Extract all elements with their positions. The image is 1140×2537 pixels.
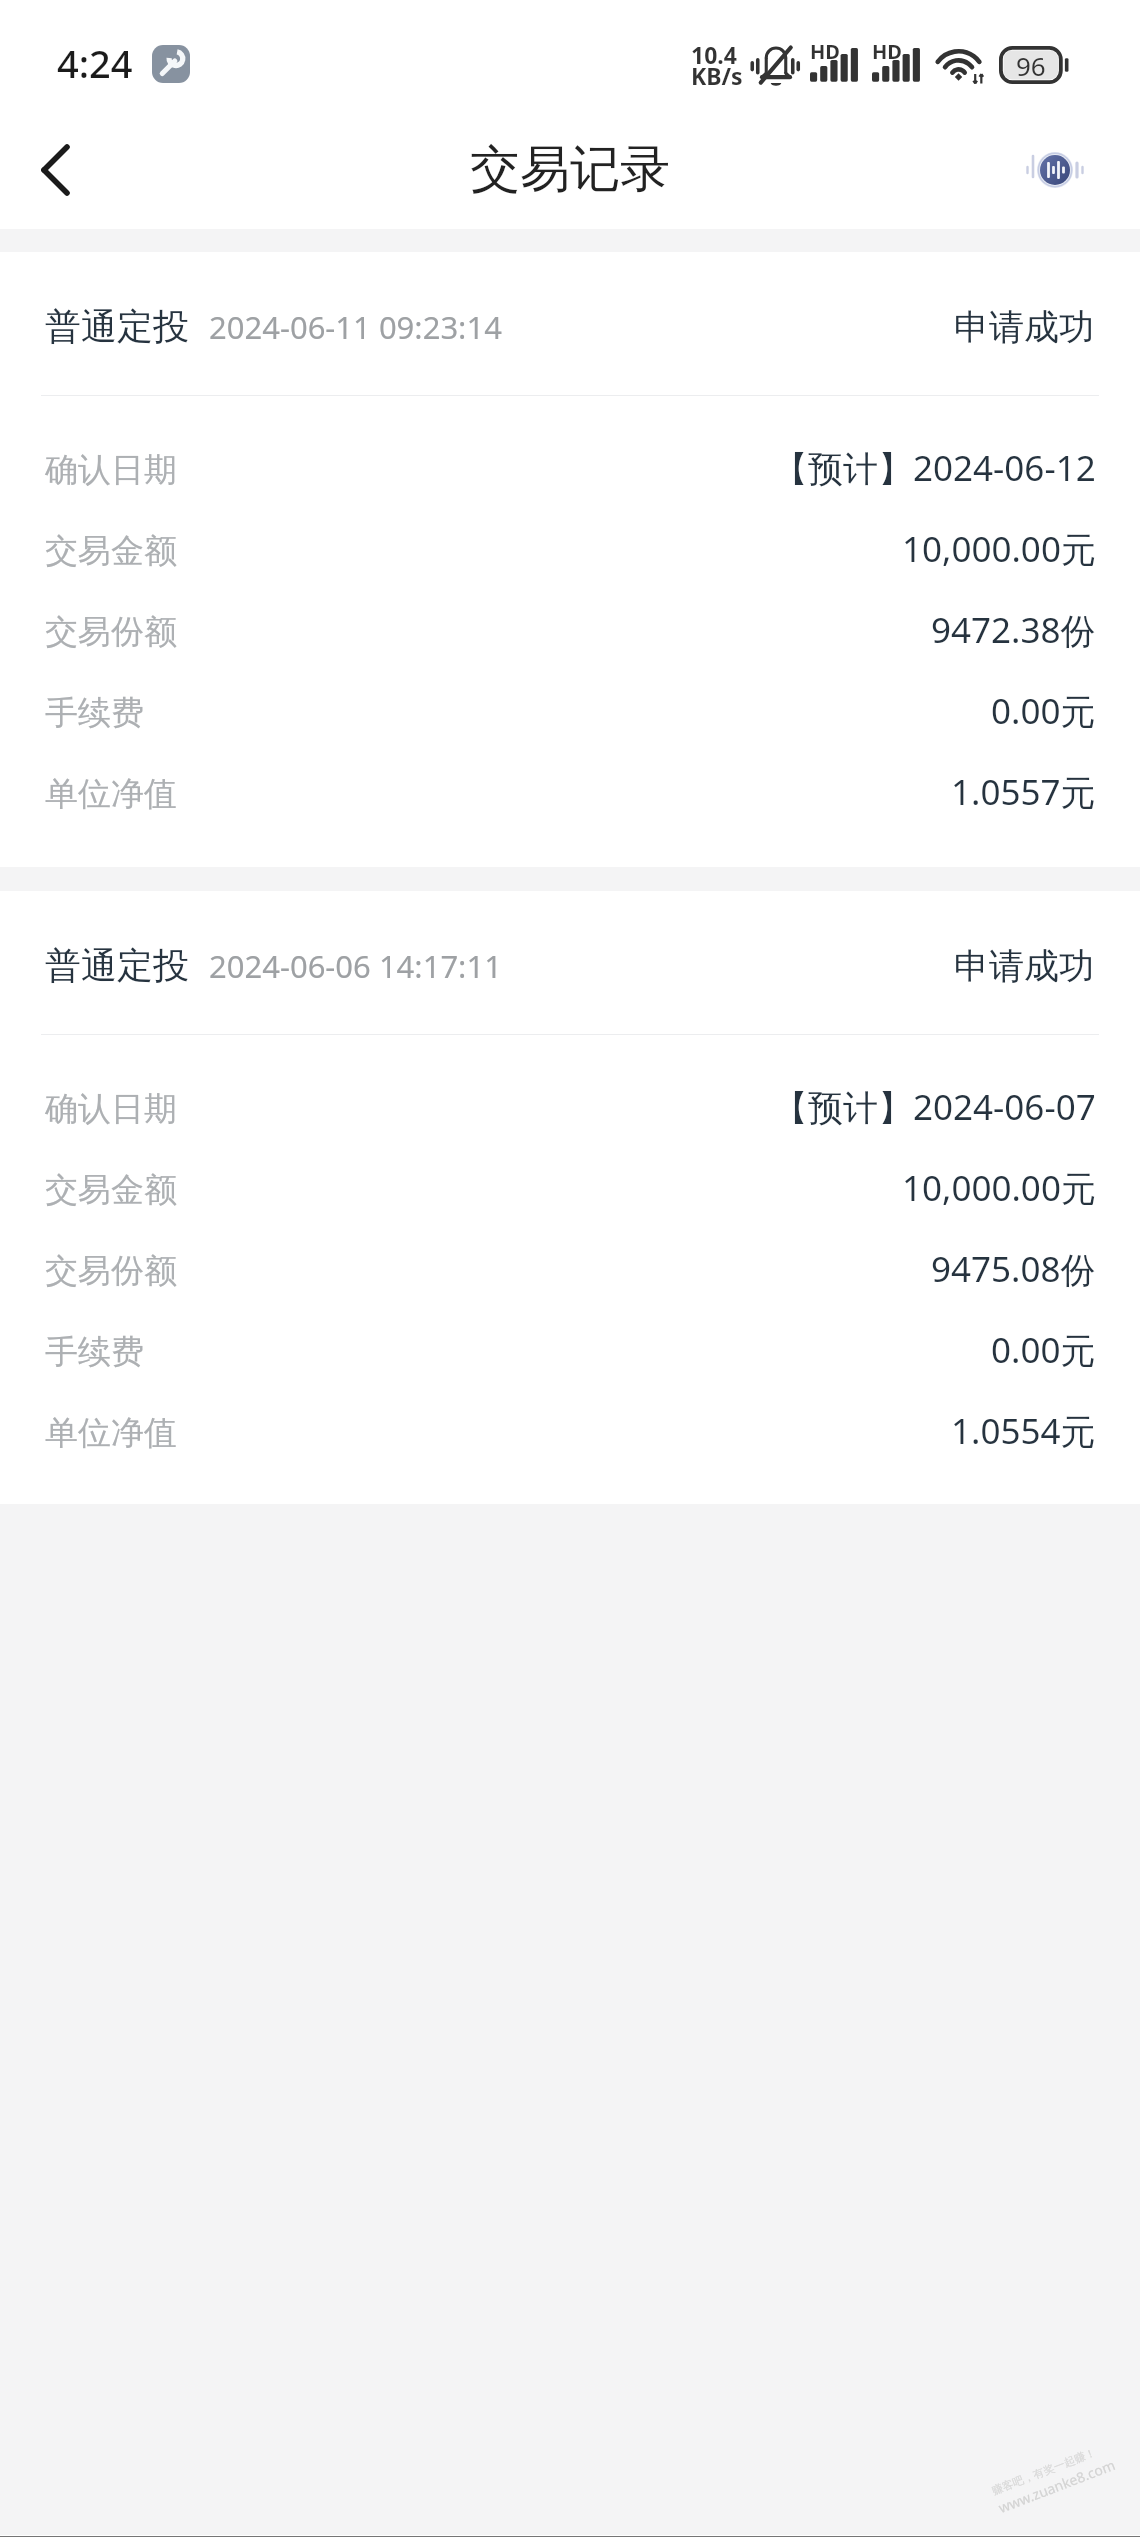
- staticText: 1.0554元: [951, 1407, 1096, 1455]
- staticText: 0.00元: [991, 1326, 1096, 1374]
- staticText: 手续费: [45, 692, 144, 734]
- staticText: 9475.08份: [931, 1245, 1096, 1293]
- staticText: 4:24: [57, 37, 133, 89]
- staticText: HD: [810, 38, 840, 65]
- staticText: 9472.38份: [931, 606, 1096, 654]
- staticText: 交易金额: [45, 1169, 177, 1211]
- staticText: 交易份额: [45, 611, 177, 653]
- staticText: 0.00元: [991, 687, 1096, 735]
- button[interactable]: Back: [12, 127, 98, 213]
- staticText: 2024-06-06 14:17:11: [209, 945, 502, 987]
- staticText: 单位净值: [45, 773, 177, 815]
- staticText: 1.0557元: [951, 768, 1096, 816]
- staticText: 10,000.00元: [902, 525, 1096, 573]
- staticText: 2024-06-11 09:23:14: [209, 306, 502, 348]
- staticText: 10.4: [691, 39, 737, 70]
- button[interactable]: 普通定投: [0, 252, 1140, 867]
- staticText: 申请成功: [954, 305, 1094, 349]
- staticText: HD: [872, 38, 902, 65]
- staticText: 96: [1016, 48, 1046, 83]
- staticText: 赚客吧，有奖一起赚！: [990, 2445, 1097, 2497]
- staticText: 确认日期: [45, 449, 177, 491]
- staticText: KB/s: [691, 60, 743, 91]
- staticText: 【预计】2024-06-12: [773, 444, 1096, 492]
- staticText: 交易份额: [45, 1250, 177, 1292]
- staticText: 确认日期: [45, 1088, 177, 1130]
- button[interactable]: Voice assistant: [1015, 130, 1095, 210]
- staticText: 普通定投: [45, 943, 189, 988]
- staticText: 普通定投: [45, 304, 189, 349]
- staticText: 手续费: [45, 1331, 144, 1373]
- button[interactable]: 普通定投: [0, 891, 1140, 1504]
- staticText: 【预计】2024-06-07: [773, 1083, 1096, 1131]
- staticText: www.zuanke8.com: [996, 2455, 1118, 2517]
- staticText: 单位净值: [45, 1412, 177, 1454]
- staticText: 申请成功: [954, 944, 1094, 988]
- staticText: 10,000.00元: [902, 1164, 1096, 1212]
- staticText: 交易记录: [470, 138, 670, 201]
- staticText: 交易金额: [45, 530, 177, 572]
